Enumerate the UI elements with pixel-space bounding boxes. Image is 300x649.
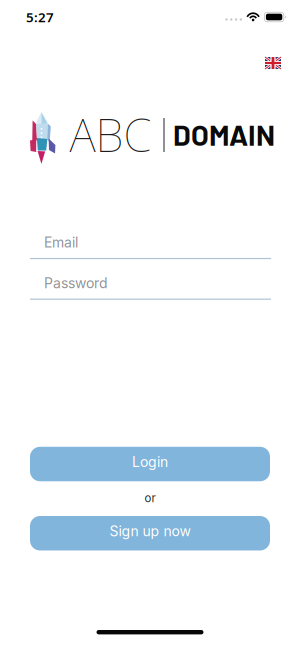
staticText: Password (44, 275, 108, 291)
staticText: 5:27 (26, 8, 54, 26)
staticText: ABC (69, 104, 151, 165)
staticText: Sign up now (109, 523, 190, 540)
button[interactable]: Sign up now (30, 516, 270, 550)
staticText: or (144, 491, 155, 505)
staticText: DOMAIN (173, 117, 275, 152)
staticText: Email (44, 234, 78, 251)
button[interactable]: Change language (265, 57, 281, 69)
staticText: Login (132, 454, 168, 470)
button[interactable]: Login (30, 447, 270, 481)
